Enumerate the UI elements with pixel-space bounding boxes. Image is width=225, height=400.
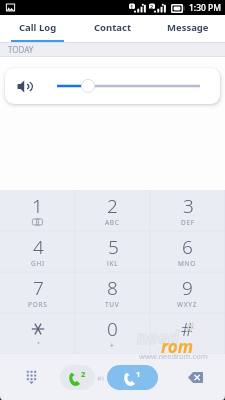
other: Volume slider	[57, 78, 200, 94]
staticText: #	[181, 316, 194, 342]
staticText: 3	[183, 193, 194, 219]
staticText: TUV	[105, 300, 120, 307]
button[interactable]: 9	[150, 272, 225, 313]
staticText: GHI	[31, 259, 45, 266]
staticText: 9	[182, 275, 193, 301]
button[interactable]: 2	[75, 190, 150, 231]
button[interactable]: 4	[0, 231, 75, 272]
other: Screenshot captured	[5, 2, 16, 13]
staticText: 7	[33, 275, 44, 301]
button[interactable]: 3	[150, 190, 225, 231]
button[interactable]: 0	[75, 313, 150, 354]
staticText: 1	[136, 369, 141, 379]
button[interactable]: 7	[0, 272, 75, 313]
button[interactable]: Show dialpad	[18, 364, 44, 390]
staticText: ABC	[105, 218, 120, 225]
staticText: TODAY	[8, 44, 34, 55]
staticText: WXYZ	[177, 300, 198, 307]
button[interactable]: Call with SIM 2	[60, 365, 95, 390]
staticText: 5	[108, 234, 119, 260]
staticText: 6	[182, 234, 193, 260]
staticText: 1	[130, 3, 134, 10]
staticText: 1	[32, 193, 43, 219]
staticText: 1:30 PM	[189, 2, 222, 14]
button[interactable]: Call Log	[0, 15, 75, 40]
button[interactable]: 6	[150, 231, 225, 272]
staticText: +	[110, 341, 115, 348]
button[interactable]: #	[150, 313, 225, 354]
staticText: 2	[150, 3, 154, 10]
button[interactable]: Call	[107, 365, 158, 390]
staticText: Contact	[94, 21, 132, 34]
staticText: MNO	[178, 259, 197, 266]
staticText: DEF	[181, 218, 195, 225]
button[interactable]	[0, 313, 75, 354]
button[interactable]: 5	[75, 231, 150, 272]
staticText: 2	[107, 193, 118, 219]
button[interactable]: Contact	[75, 15, 150, 40]
staticText: 4	[33, 234, 44, 260]
button[interactable]: Backspace	[182, 364, 208, 390]
staticText: rom	[161, 335, 194, 358]
staticText: PQRS	[28, 300, 48, 307]
button[interactable]: 8	[75, 272, 150, 313]
staticText: JKL	[107, 259, 119, 266]
staticText: 8	[107, 275, 118, 301]
staticText: «‹	[97, 371, 105, 383]
other: Volume	[17, 79, 32, 94]
staticText: Message	[167, 21, 209, 34]
staticText: 2	[81, 369, 86, 379]
staticText: 0	[107, 316, 118, 342]
button[interactable]: 1	[0, 190, 75, 231]
staticText: need	[137, 325, 179, 350]
button[interactable]: Message	[150, 15, 225, 40]
staticText: Call Log	[19, 21, 57, 34]
staticText: www.needrom.com	[139, 351, 208, 361]
staticText: #	[185, 316, 195, 336]
